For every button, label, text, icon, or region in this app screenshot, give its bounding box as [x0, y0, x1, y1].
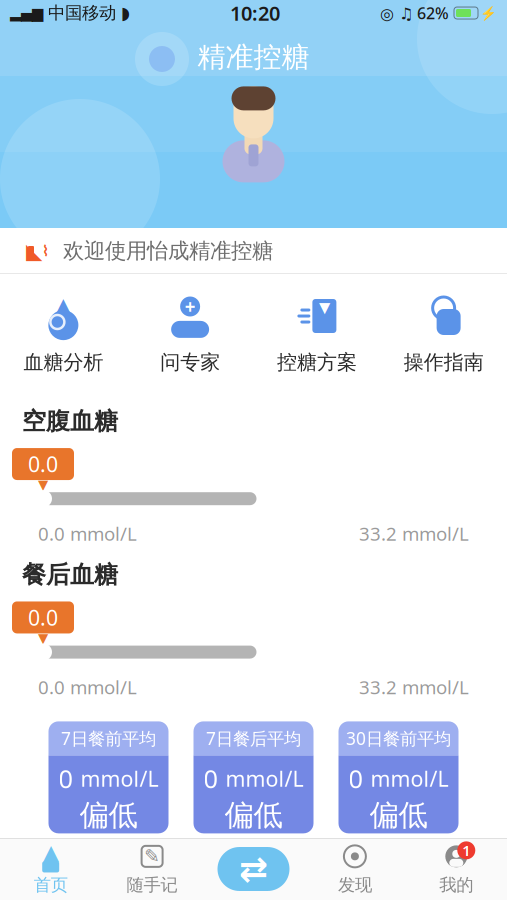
- staticText: ◎ ♫ 62%: [380, 2, 449, 24]
- staticText: 0: [203, 761, 217, 795]
- button[interactable]: ▼: [253, 290, 380, 379]
- staticText: ▲: [43, 840, 59, 864]
- staticText: 精准控糖: [197, 40, 309, 74]
- staticText: 30日餐前平均: [346, 727, 451, 750]
- staticText: 首页: [34, 874, 68, 896]
- staticText: ◣: [26, 239, 42, 263]
- staticText: 33.2 mmol/L: [359, 675, 469, 699]
- staticText: ▼: [319, 299, 330, 316]
- staticText: 7日餐后平均: [206, 727, 301, 750]
- staticText: 我的: [439, 874, 473, 896]
- staticText: ⌇: [42, 243, 49, 259]
- staticText: 0.0: [28, 603, 58, 632]
- button[interactable]: ✎: [101, 836, 203, 900]
- staticText: mmol/L: [80, 764, 158, 792]
- button[interactable]: 30日餐前平均: [338, 721, 458, 833]
- button[interactable]: 发现: [304, 836, 406, 900]
- button[interactable]: 1: [406, 836, 507, 900]
- button[interactable]: ▲: [0, 836, 101, 900]
- button[interactable]: 同步: [203, 847, 304, 891]
- button[interactable]: 7日餐前平均: [48, 721, 168, 833]
- staticText: 发现: [338, 874, 372, 896]
- staticText: ⇄: [239, 849, 268, 889]
- staticText: ▼: [38, 630, 48, 645]
- button[interactable]: +: [127, 290, 254, 379]
- staticText: ▂▄▆: [10, 5, 43, 21]
- staticText: 控糖方案: [277, 350, 357, 375]
- staticText: 1: [462, 841, 470, 860]
- staticText: 0.0 mmol/L: [38, 521, 137, 546]
- staticText: 血糖分析: [23, 350, 103, 375]
- staticText: 空腹血糖: [22, 407, 118, 436]
- staticText: 0.0 mmol/L: [38, 675, 137, 699]
- staticText: mmol/L: [225, 764, 303, 792]
- staticText: 欢迎使用怡成精准控糖: [63, 238, 273, 264]
- staticText: 操作指南: [404, 350, 484, 375]
- staticText: ⚡: [480, 5, 497, 21]
- staticText: mmol/L: [370, 764, 448, 792]
- button[interactable]: 操作指南: [380, 290, 507, 379]
- staticText: 偏低: [224, 797, 282, 833]
- staticText: ◗: [121, 3, 130, 23]
- staticText: 偏低: [369, 797, 427, 833]
- button[interactable]: ▲: [0, 290, 127, 379]
- staticText: 偏低: [79, 797, 137, 833]
- staticText: 0: [348, 761, 362, 795]
- staticText: 随手记: [127, 874, 178, 896]
- staticText: 10:20: [230, 0, 280, 26]
- staticText: 33.2 mmol/L: [359, 521, 469, 546]
- staticText: 问专家: [160, 350, 220, 375]
- staticText: 中国移动: [48, 2, 116, 24]
- staticText: ✎: [144, 846, 160, 867]
- button[interactable]: ◣: [0, 228, 507, 274]
- staticText: 0: [58, 761, 72, 795]
- staticText: ▲: [53, 292, 74, 322]
- staticText: 0.0: [28, 450, 58, 478]
- button[interactable]: 7日餐后平均: [193, 721, 313, 833]
- staticText: +: [185, 294, 196, 319]
- staticText: 7日餐前平均: [61, 727, 156, 750]
- staticText: 餐后血糖: [22, 560, 118, 589]
- staticText: ▼: [38, 477, 48, 492]
